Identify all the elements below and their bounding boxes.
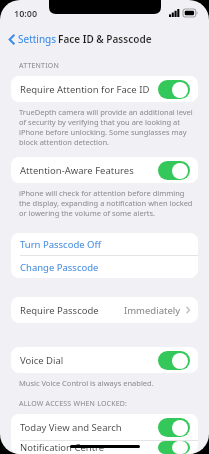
other: Toggle, on	[158, 161, 190, 180]
staticText: Require Passcode	[20, 304, 124, 317]
staticText: Attention-Aware Features	[20, 164, 158, 177]
staticText: Immediately	[124, 304, 181, 317]
other: Toggle, on	[158, 351, 190, 370]
staticText: Require Attention for Face ID	[20, 83, 158, 96]
staticText: Face ID & Passcode	[58, 32, 152, 46]
staticText: Notification Centre	[20, 441, 158, 454]
button[interactable]: Change Passcode	[11, 256, 198, 278]
other: Toggle, on	[158, 418, 190, 437]
other: Toggle, on	[158, 80, 190, 99]
staticText: Today View and Search	[20, 421, 158, 434]
button[interactable]: Notification Centre	[11, 441, 198, 454]
staticText: Change Passcode	[20, 261, 99, 274]
button[interactable]: Turn Passcode Off	[11, 233, 198, 255]
staticText: iPhone will check for attention before d…	[19, 188, 196, 218]
staticText: ALLOW ACCESS WHEN LOCKED:	[19, 399, 128, 409]
other: Toggle, on	[158, 441, 190, 454]
button[interactable]: Require Passcode	[11, 297, 198, 323]
staticText: Voice Dial	[20, 354, 158, 367]
button[interactable]: Voice Dial	[11, 347, 198, 373]
button[interactable]: Require Attention for Face ID	[11, 76, 198, 102]
staticText: TrueDepth camera will provide an additio…	[19, 107, 196, 147]
staticText: ATTENTION	[19, 61, 59, 71]
staticText: Music Voice Control is always enabled.	[19, 378, 154, 388]
staticText: Turn Passcode Off	[20, 238, 102, 251]
button[interactable]: Settings	[6, 28, 60, 50]
button[interactable]: Today View and Search	[11, 414, 198, 440]
staticText: Settings	[18, 32, 57, 46]
staticText: 10:00	[14, 7, 38, 19]
button[interactable]: Attention-Aware Features	[11, 157, 198, 183]
